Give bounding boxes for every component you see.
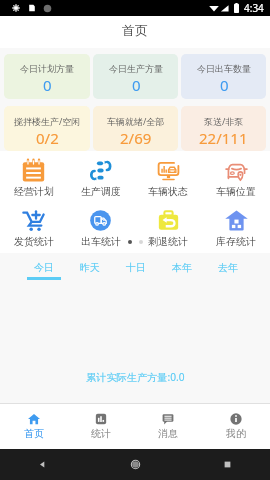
staticText: 十日 <box>126 261 146 274</box>
button[interactable]: 今日生产方量 <box>93 54 178 99</box>
button[interactable]: 今日计划方量 <box>4 54 90 99</box>
button[interactable]: 经营计划 <box>0 159 67 198</box>
button[interactable]: 昨天 <box>67 261 113 280</box>
staticText: 消息 <box>158 427 178 440</box>
staticText: 今日 <box>34 261 54 274</box>
button[interactable]: 我的 <box>202 404 270 449</box>
staticText: 搅拌楼生产/空闲 <box>14 115 81 127</box>
staticText: 库存统计 <box>216 235 256 248</box>
button[interactable]: 十日 <box>113 261 159 280</box>
staticText: 车辆状态 <box>148 185 188 198</box>
staticText: 剩退统计 <box>148 235 188 248</box>
staticText: 我的 <box>226 427 246 440</box>
staticText: 2/69 <box>120 128 152 148</box>
staticText: 累计实际生产方量:0.0 <box>86 370 185 384</box>
staticText: 0 <box>220 75 229 95</box>
button[interactable]: 剩退统计 <box>134 209 202 248</box>
staticText: 生产调度 <box>81 185 121 198</box>
staticText: 经营计划 <box>14 185 54 198</box>
button[interactable]: 消息 <box>134 404 202 449</box>
staticText: 出车统计 <box>81 235 121 248</box>
other: Recents <box>223 460 232 469</box>
staticText: 0 <box>43 75 52 95</box>
button[interactable]: 今日出车数量 <box>181 54 266 99</box>
button[interactable]: 统计 <box>67 404 134 449</box>
button[interactable]: 泵送/非泵 <box>181 106 266 151</box>
button[interactable]: 发货统计 <box>0 209 67 248</box>
staticText: 泵送/非泵 <box>204 115 244 127</box>
button[interactable]: 去年 <box>205 261 251 280</box>
other: Back <box>38 460 47 469</box>
button[interactable]: 车辆位置 <box>202 159 270 198</box>
other: Home <box>130 459 141 470</box>
button[interactable]: 车辆就绪/全部 <box>93 106 178 151</box>
staticText: 今日计划方量 <box>20 63 74 74</box>
button[interactable]: 本年 <box>159 261 205 280</box>
staticText: 今日出车数量 <box>197 63 251 74</box>
button[interactable]: 车辆状态 <box>134 159 202 198</box>
button[interactable]: 今日 <box>21 261 67 280</box>
staticText: 去年 <box>218 261 238 274</box>
staticText: 4:34 <box>244 1 264 15</box>
button[interactable]: 首页 <box>0 404 67 449</box>
staticText: 统计 <box>91 427 111 440</box>
staticText: 0/2 <box>36 128 59 148</box>
staticText: 车辆位置 <box>216 185 256 198</box>
staticText: 本年 <box>172 261 192 274</box>
staticText: 发货统计 <box>14 235 54 248</box>
staticText: 首页 <box>24 427 44 440</box>
staticText: 0 <box>132 75 141 95</box>
staticText: 首页 <box>122 22 148 38</box>
staticText: 22/111 <box>199 128 248 148</box>
staticText: 今日生产方量 <box>109 63 163 74</box>
staticText: 车辆就绪/全部 <box>107 115 165 127</box>
button[interactable]: 出车统计 <box>67 209 134 248</box>
staticText: 昨天 <box>80 261 100 274</box>
button[interactable]: 搅拌楼生产/空闲 <box>4 106 90 151</box>
button[interactable]: 生产调度 <box>67 159 134 198</box>
button[interactable]: 库存统计 <box>202 209 270 248</box>
